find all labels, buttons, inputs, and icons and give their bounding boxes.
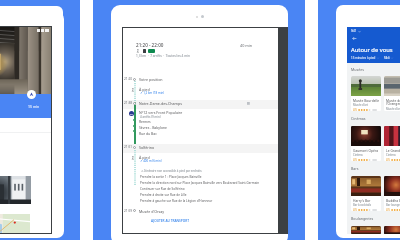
- button[interactable]: Gaumont Opéra: [351, 126, 381, 161]
- button[interactable]: Back: [351, 35, 358, 42]
- staticText: 9:41: [351, 29, 357, 33]
- staticText: Prendre à droite sur Rue de Lille: [140, 193, 187, 197]
- staticText: Buddha Bar: [386, 198, 400, 202]
- staticText: AJOUTER AU TRANSPORT: [151, 219, 190, 223]
- staticText: Gaumont Opéra: [353, 148, 379, 152]
- staticText: 4,5: [386, 158, 390, 161]
- staticText: À pied: [139, 87, 150, 92]
- staticText: 4,5: [386, 208, 390, 211]
- staticText: Cinéma: [353, 153, 363, 157]
- staticText: Bars: [351, 166, 359, 171]
- staticText: Votre position: [139, 77, 163, 82]
- staticText: 12: [130, 112, 133, 115]
- staticText: 15 minutes à pied: [351, 56, 376, 60]
- staticText: Rue du Bac: [139, 131, 157, 136]
- button[interactable]: [123, 100, 278, 109]
- staticText: Musée d'Orsay: [139, 209, 165, 214]
- staticText: Sèvres - Babylone: [139, 125, 167, 130]
- button[interactable]: Musée de l'Orangerie: [384, 76, 400, 111]
- staticText: 21:59: [124, 209, 133, 213]
- staticText: Cinéma: [386, 153, 396, 157]
- staticText: 21:38: [124, 101, 133, 105]
- staticText: 15 min: [28, 104, 40, 109]
- staticText: Notre-Dame-des-Champs: [139, 101, 182, 106]
- staticText: 4,5: [353, 108, 357, 111]
- staticText: 1,3 km · 7 arrêts · Toutes les 4 min: [136, 54, 190, 58]
- button[interactable]: Buddha Bar: [384, 176, 400, 211]
- staticText: N°12 vers Front Populaire: [139, 110, 183, 115]
- staticText: Rennes: [139, 119, 151, 124]
- staticText: Cinémas: [351, 116, 366, 121]
- staticText: Boulangeries: [351, 216, 374, 221]
- staticText: Musée Bourdelle: [353, 98, 380, 102]
- staticText: 40 min: [240, 43, 253, 48]
- staticText: Harry's Bar: [353, 198, 371, 202]
- staticText: Prendre la sortie 1 : Place Jacques Bain…: [140, 175, 202, 179]
- other: Step details: [247, 102, 251, 106]
- button[interactable]: [351, 226, 381, 234]
- staticText: Le Grand Rex: [386, 148, 400, 152]
- button[interactable]: Directions: [27, 90, 36, 99]
- button[interactable]: [123, 144, 278, 153]
- staticText: 4 arrêts (9 min): [140, 115, 161, 119]
- button[interactable]: Musée Bourdelle: [351, 76, 381, 111]
- staticText: 4,5: [353, 158, 357, 161]
- staticText: 21:20 - 22:00: [136, 42, 164, 48]
- staticText: Bar à cocktails: [353, 203, 372, 207]
- staticText: Midi: [384, 56, 390, 60]
- staticText: ⚠ Itinéraire non accessible à pied par e…: [141, 169, 202, 173]
- staticText: 21:51: [124, 145, 133, 149]
- staticText: 21:20: [124, 77, 133, 81]
- staticText: ↗ 400 m (6 min): [140, 159, 162, 163]
- staticText: Autour de vous: [351, 46, 393, 54]
- staticText: À pied: [139, 155, 150, 160]
- staticText: Musée d'art: [353, 103, 368, 107]
- staticText: Musées: [351, 67, 364, 72]
- button[interactable]: Le Grand Rex: [384, 126, 400, 161]
- button[interactable]: AJOUTER AU TRANSPORT: [151, 219, 190, 223]
- staticText: Prendre à gauche sur Rue de la Légion d'…: [140, 199, 213, 203]
- staticText: 4,5: [353, 208, 357, 211]
- staticText: Solférino: [139, 145, 155, 150]
- staticText: ↗ 1,2 km (18 min): [140, 91, 165, 95]
- staticText: Prendre la direction nord sur Place Jacq…: [140, 181, 260, 185]
- button[interactable]: [384, 226, 400, 234]
- staticText: Musée de l'Orangerie: [386, 98, 400, 106]
- button[interactable]: Harry's Bar: [351, 176, 381, 211]
- staticText: Continuer sur Rue de Solférino: [140, 187, 185, 191]
- staticText: Musée d'art: [386, 107, 400, 111]
- staticText: Bar lounge: [386, 203, 400, 207]
